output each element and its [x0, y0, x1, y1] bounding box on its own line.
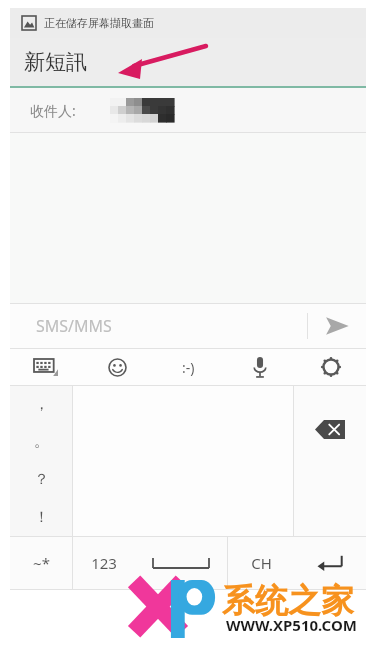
staticText: 新短訊 [24, 49, 87, 75]
other: Screenshot [22, 16, 36, 30]
staticText: 123 [91, 553, 117, 573]
button[interactable]: 123 [73, 537, 135, 589]
button[interactable]: ， [10, 386, 72, 423]
staticText: 系统之家 [222, 580, 354, 622]
button[interactable]: SMS/MMS [10, 315, 307, 337]
staticText: CH [251, 553, 272, 573]
button[interactable]: Space [135, 537, 227, 589]
staticText: ！ [34, 508, 49, 527]
staticText: ？ [34, 470, 49, 489]
staticText: WWW.XP510.COM [226, 615, 357, 635]
staticText: 收件人: [30, 101, 76, 120]
button[interactable]: 。 [10, 423, 72, 460]
staticText: 正在儲存屏幕擷取畫面 [44, 16, 154, 30]
staticText: :-) [182, 358, 195, 377]
staticText: 。 [34, 432, 49, 451]
staticText: ， [34, 395, 49, 414]
button[interactable]: ~* [10, 537, 72, 589]
staticText: ~* [33, 553, 50, 573]
button[interactable]: Send [308, 304, 366, 348]
button[interactable]: Backspace [294, 386, 366, 536]
button[interactable]: Enter [294, 537, 366, 589]
button[interactable]: Keyboard [10, 349, 82, 385]
button[interactable]: ？ [10, 460, 72, 498]
button[interactable]: Settings [295, 349, 366, 385]
button[interactable]: CH [228, 537, 294, 589]
button[interactable]: Voice input [224, 349, 295, 385]
button[interactable]: Emoticons [153, 349, 224, 385]
button[interactable]: Emoji [82, 349, 153, 385]
button[interactable]: ！ [10, 498, 72, 536]
